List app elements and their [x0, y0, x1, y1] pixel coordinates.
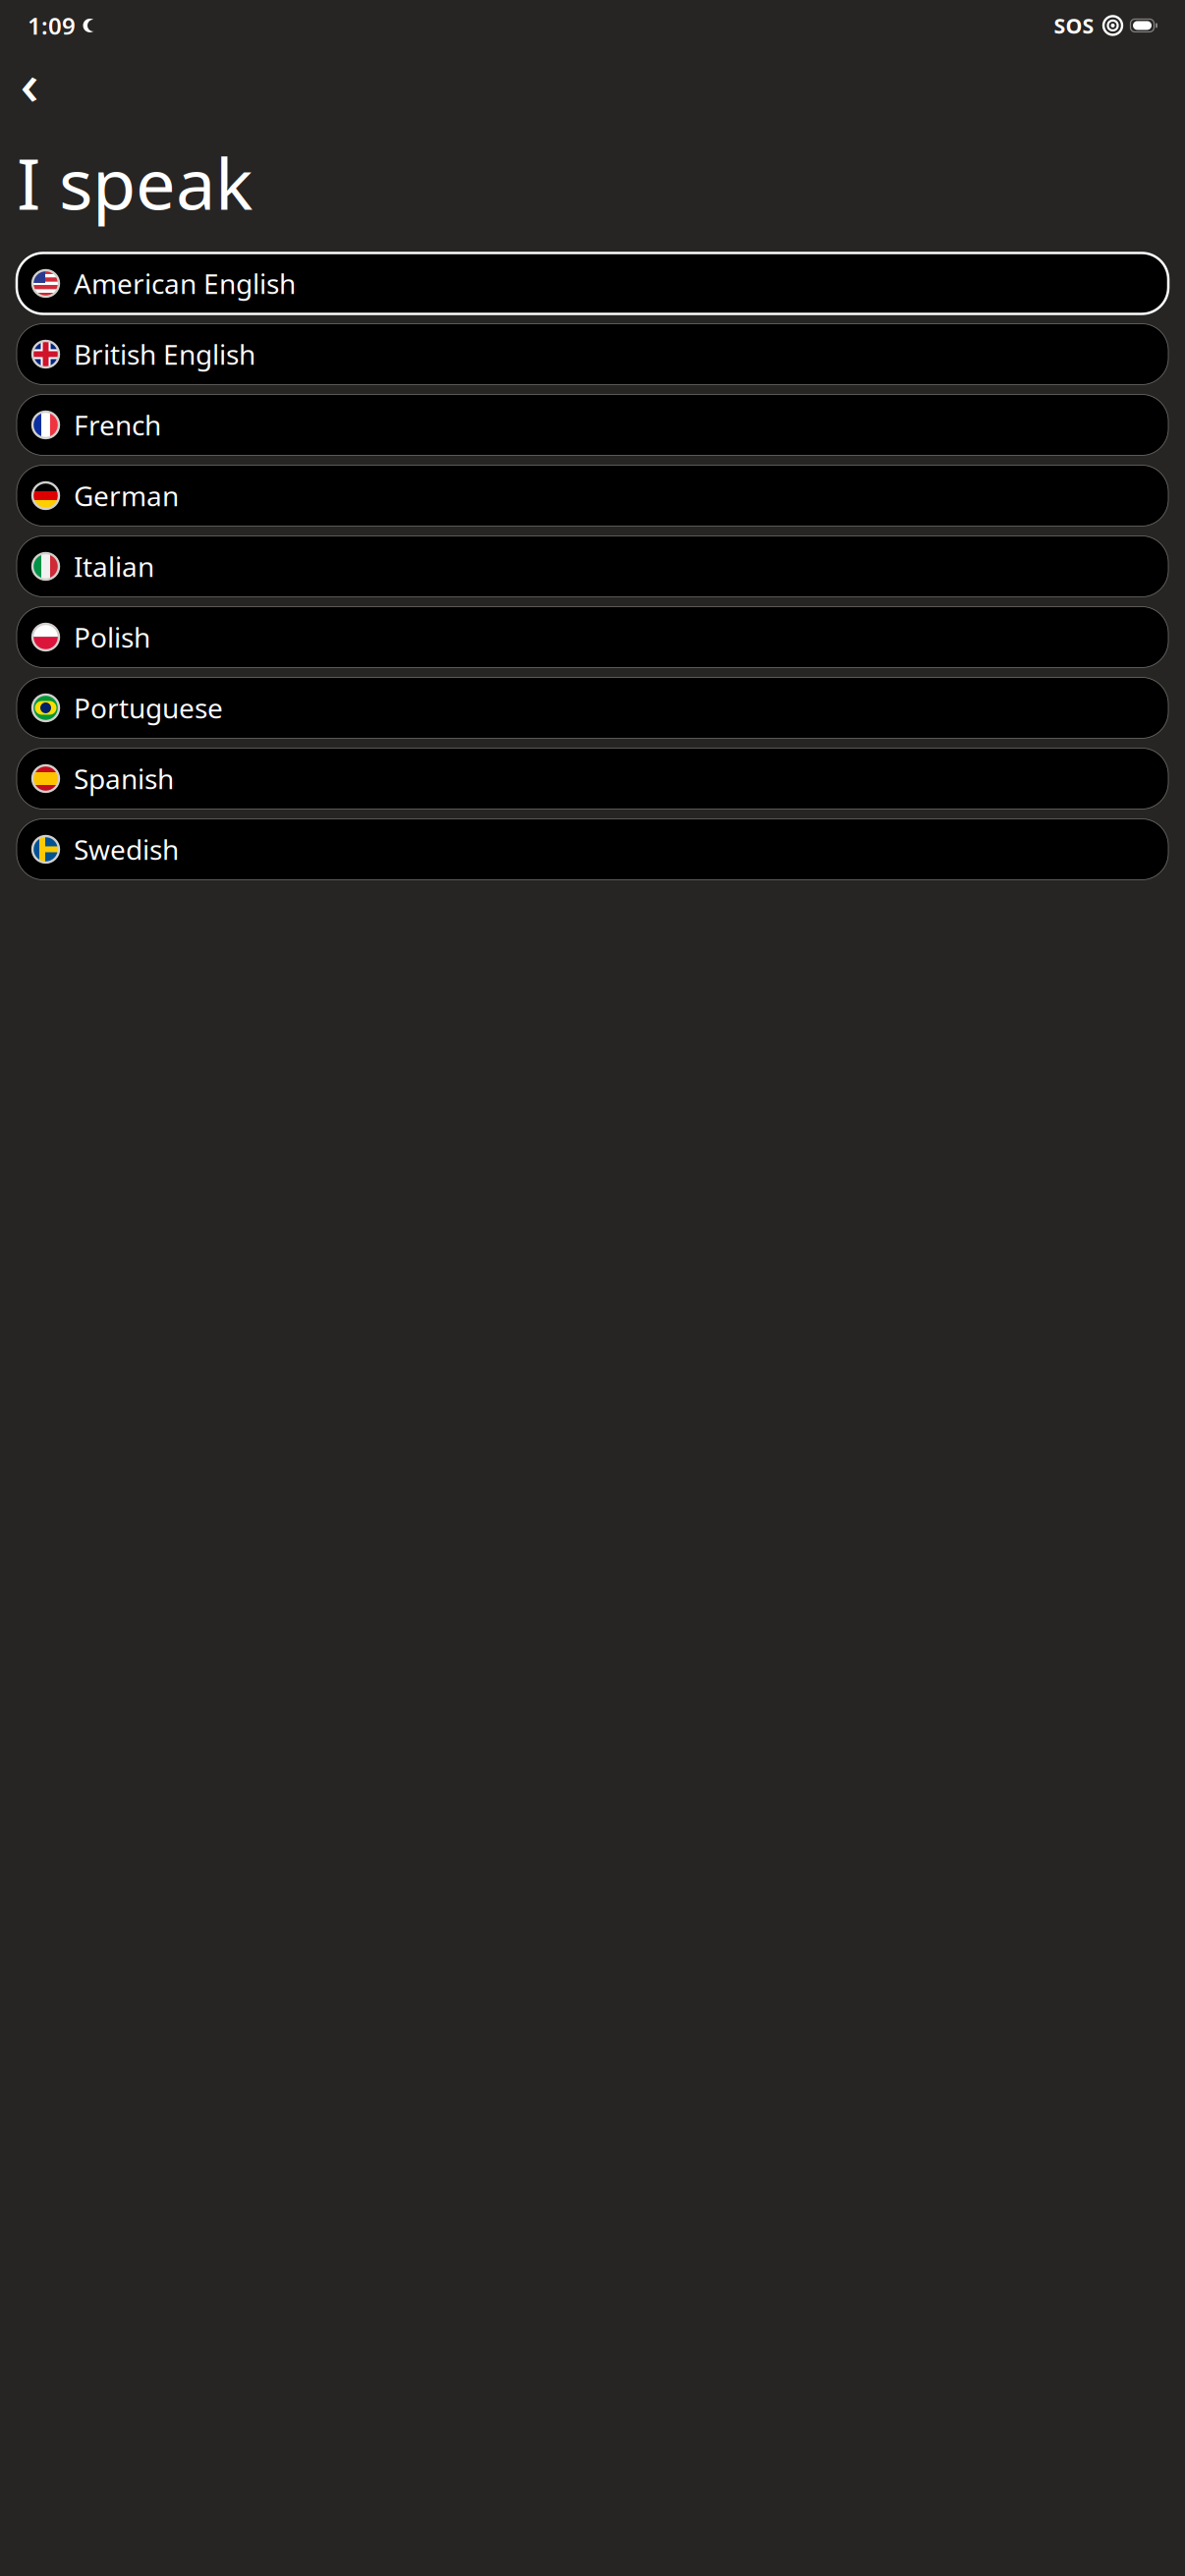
staticText: British English	[74, 336, 255, 372]
button[interactable]: Portuguese	[17, 677, 1168, 738]
staticText: 1:09	[28, 10, 76, 41]
staticText: SOS	[1054, 12, 1094, 39]
button[interactable]: Spanish	[17, 748, 1168, 809]
staticText: Swedish	[74, 831, 179, 868]
staticText: Polish	[74, 619, 150, 655]
button[interactable]: Polish	[17, 607, 1168, 668]
button[interactable]: French	[17, 394, 1168, 455]
button[interactable]: American English	[17, 253, 1168, 314]
staticText: German	[74, 477, 179, 514]
button[interactable]: British English	[17, 324, 1168, 385]
staticText: Italian	[74, 548, 154, 585]
button[interactable]: Italian	[17, 536, 1168, 597]
button[interactable]: Back	[8, 61, 51, 104]
staticText: I speak	[17, 135, 253, 229]
button[interactable]: Swedish	[17, 819, 1168, 880]
staticText: Spanish	[74, 760, 174, 797]
staticText: Portuguese	[74, 690, 223, 726]
staticText: American English	[74, 265, 296, 302]
staticText: French	[74, 407, 161, 443]
button[interactable]: German	[17, 465, 1168, 526]
staticText: ‹	[20, 44, 39, 121]
